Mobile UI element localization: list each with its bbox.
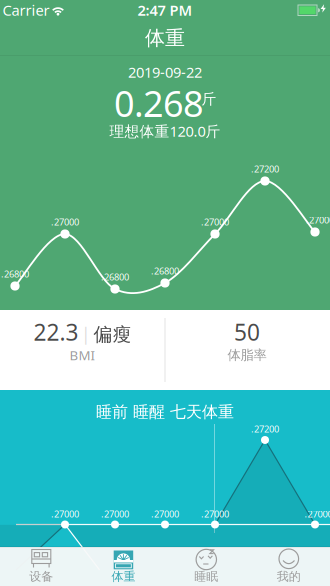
staticText: .26800 [101,271,129,283]
staticText: .27000 [304,508,330,520]
staticText: BMI [69,346,95,364]
staticText: .27000 [51,508,79,520]
staticText: 体重 [145,26,185,50]
staticText: .27200 [251,163,279,175]
staticText: .27000 [201,508,229,520]
staticText: .26800 [1,268,29,280]
staticText: .27200 [251,423,279,435]
staticText: 设备 [29,569,53,584]
staticText: | [81,323,91,346]
staticText: Carrier [2,0,49,20]
staticText: 2019-09-22 [128,62,202,82]
staticText: 2:47 PM [137,0,192,20]
staticText: 50 [234,317,260,347]
staticText: .27000 [306,214,330,226]
staticText: 睡眠 [194,569,218,584]
staticText: 理想体重120.0斤 [109,121,220,141]
staticText: .27000 [51,216,79,228]
staticText: 体脂率 [227,347,266,363]
staticText: 睡前 睡醒 七天体重 [96,402,234,422]
staticText: 22.3 [33,317,78,347]
staticText: .26800 [151,265,179,277]
staticText: .27000 [151,508,179,520]
staticText: 0.268 [114,79,204,127]
staticText: 斤 [201,90,216,108]
staticText: 我的 [277,569,301,584]
staticText: .27000 [201,216,229,228]
staticText: .27000 [101,508,129,520]
staticText: 偏瘦 [93,323,131,346]
staticText: 体重 [111,569,135,584]
